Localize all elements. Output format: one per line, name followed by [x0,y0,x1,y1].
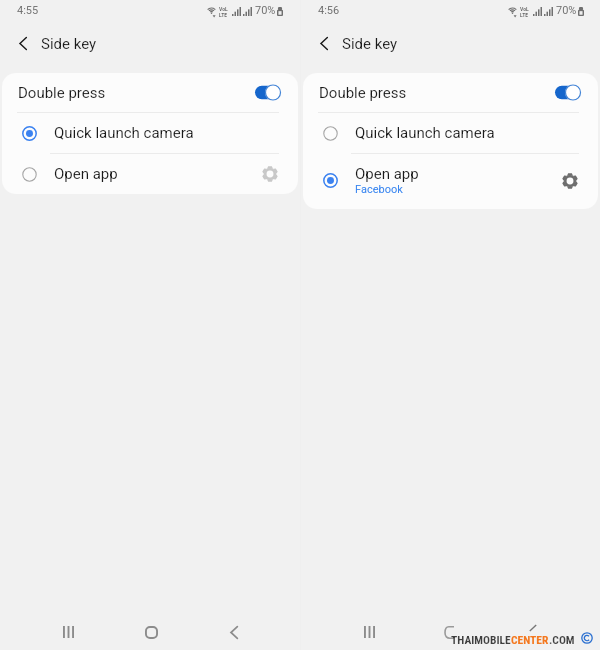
staticText: Double press [18,84,106,102]
button[interactable]: Recents [352,619,386,645]
staticText: 70% [556,4,577,17]
staticText: LTE [219,12,228,18]
button[interactable]: Quick launch camera [2,113,298,153]
staticText: .COM [549,633,575,646]
staticText: Side key [41,35,97,53]
button[interactable]: Back [217,619,251,645]
button[interactable]: Settings [257,161,283,187]
button[interactable]: Settings [557,168,583,194]
button[interactable]: Back [310,29,338,57]
staticText: VoL [219,6,228,12]
button[interactable]: Quick launch camera [303,113,598,153]
staticText: VoL [520,6,529,12]
button[interactable]: Recents [51,619,85,645]
staticText: CENTER [511,633,549,646]
button[interactable]: Open app [2,154,298,194]
staticText: 4:56 [318,4,340,17]
staticText: Open app [355,165,419,183]
button[interactable]: Home [134,619,168,645]
staticText: 70% [255,4,276,17]
staticText: Open app [54,165,118,183]
staticText: Side key [342,35,398,53]
staticText: 4:55 [17,4,39,17]
staticText: Facebook [355,183,403,196]
button[interactable]: Double press [303,73,598,112]
button[interactable]: Back [9,29,37,57]
staticText: Double press [319,84,407,102]
button[interactable]: Open app [303,154,598,209]
staticText: Quick launch camera [54,124,194,142]
staticText: Quick launch camera [355,124,495,142]
staticText: THAIMOBILE [451,633,511,646]
staticText: LTE [520,12,529,18]
button[interactable]: Double press [2,73,298,112]
